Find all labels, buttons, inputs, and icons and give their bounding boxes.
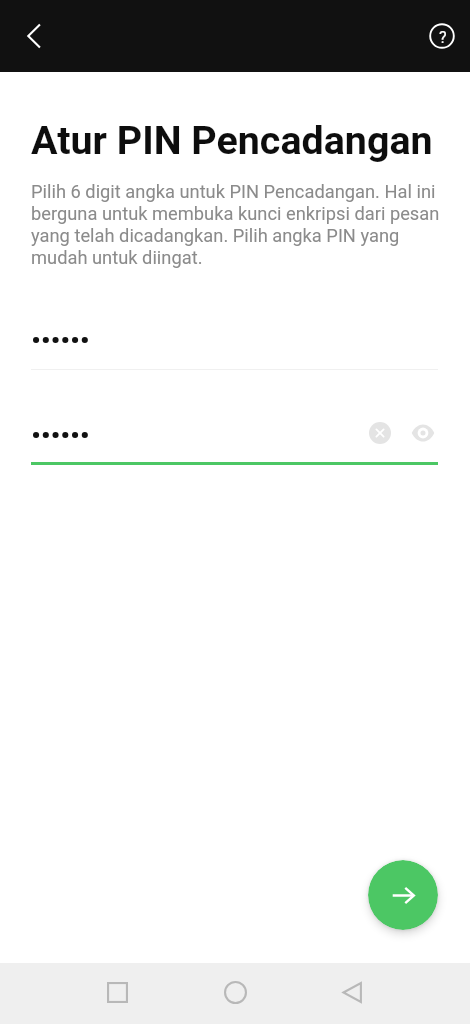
staticText: Pilih 6 digit angka untuk PIN Pencadanga… [31, 181, 443, 269]
button[interactable]: Back [328, 968, 376, 1016]
button[interactable]: Home [211, 968, 259, 1016]
button[interactable]: Help [418, 12, 466, 60]
button[interactable]: Clear [362, 415, 398, 451]
staticText: Atur PIN Pencadangan [31, 117, 451, 163]
button[interactable]: Back [10, 12, 58, 60]
button[interactable]: Recents [93, 968, 141, 1016]
button[interactable]: Backup PIN [31, 324, 438, 370]
button[interactable]: Show PIN [405, 415, 441, 451]
button[interactable]: Next [368, 860, 438, 930]
staticText: ? [439, 28, 447, 47]
button[interactable]: Confirm Backup PIN [31, 419, 356, 465]
